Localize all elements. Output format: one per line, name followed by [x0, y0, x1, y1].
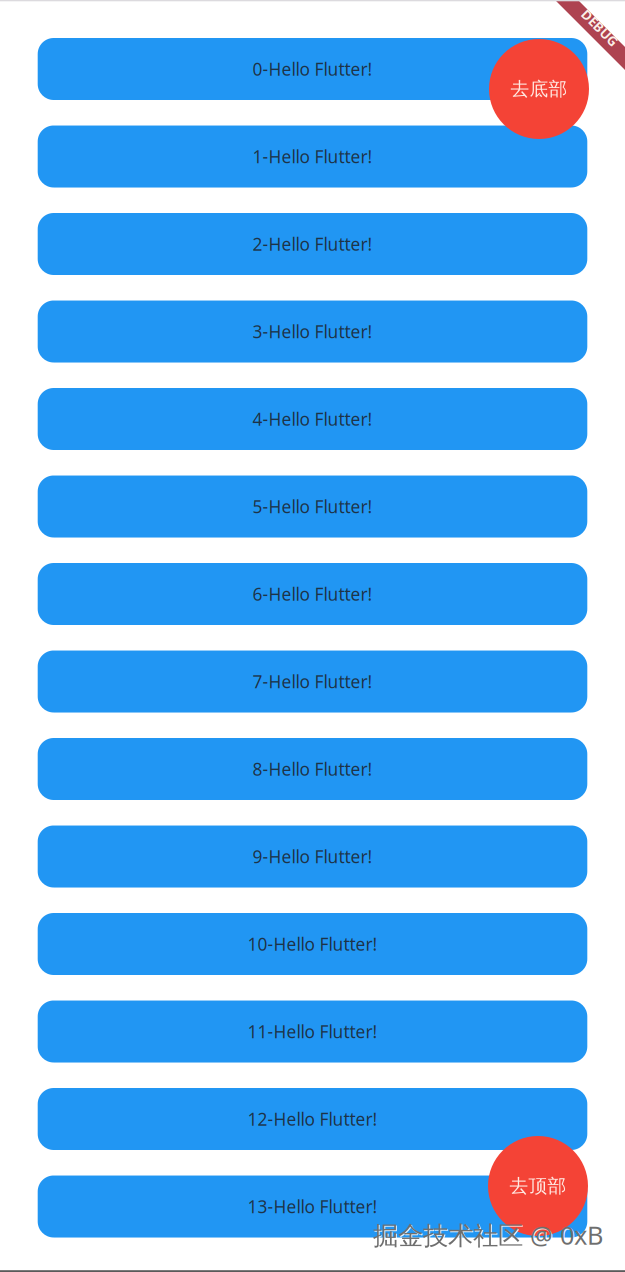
- staticText: 7-Hello Flutter!: [252, 670, 372, 693]
- button[interactable]: 9-Hello Flutter!: [38, 825, 587, 887]
- staticText: DEBUG: [577, 19, 623, 37]
- button[interactable]: 10-Hello Flutter!: [38, 913, 587, 975]
- staticText: 掘金技术社区 @ 0xB: [373, 1218, 603, 1252]
- staticText: 5-Hello Flutter!: [252, 495, 372, 518]
- staticText: 去顶部: [509, 1174, 566, 1197]
- staticText: 8-Hello Flutter!: [252, 757, 372, 780]
- staticText: 2-Hello Flutter!: [252, 232, 372, 255]
- staticText: 1-Hello Flutter!: [252, 145, 372, 168]
- button[interactable]: 去顶部: [488, 1136, 588, 1236]
- staticText: 9-Hello Flutter!: [252, 845, 372, 868]
- button[interactable]: 1-Hello Flutter!: [38, 125, 587, 187]
- staticText: 6-Hello Flutter!: [252, 582, 372, 605]
- button[interactable]: 11-Hello Flutter!: [38, 1000, 587, 1062]
- staticText: 13-Hello Flutter!: [247, 1195, 377, 1218]
- staticText: 11-Hello Flutter!: [247, 1020, 377, 1043]
- button[interactable]: 7-Hello Flutter!: [38, 650, 587, 712]
- staticText: 3-Hello Flutter!: [252, 320, 372, 343]
- button[interactable]: 8-Hello Flutter!: [38, 738, 587, 800]
- button[interactable]: 去底部: [489, 39, 589, 139]
- staticText: 12-Hello Flutter!: [247, 1107, 377, 1130]
- button[interactable]: 4-Hello Flutter!: [38, 388, 587, 450]
- button[interactable]: 5-Hello Flutter!: [38, 475, 587, 537]
- button[interactable]: 3-Hello Flutter!: [38, 300, 587, 362]
- staticText: 10-Hello Flutter!: [247, 932, 377, 955]
- button[interactable]: 0-Hello Flutter!: [38, 38, 587, 100]
- button[interactable]: 13-Hello Flutter!: [38, 1175, 587, 1237]
- button[interactable]: 2-Hello Flutter!: [38, 213, 587, 275]
- staticText: 去底部: [510, 77, 567, 100]
- button[interactable]: 6-Hello Flutter!: [38, 563, 587, 625]
- staticText: 0-Hello Flutter!: [252, 57, 372, 80]
- staticText: 4-Hello Flutter!: [252, 407, 372, 430]
- button[interactable]: 12-Hello Flutter!: [38, 1088, 587, 1150]
